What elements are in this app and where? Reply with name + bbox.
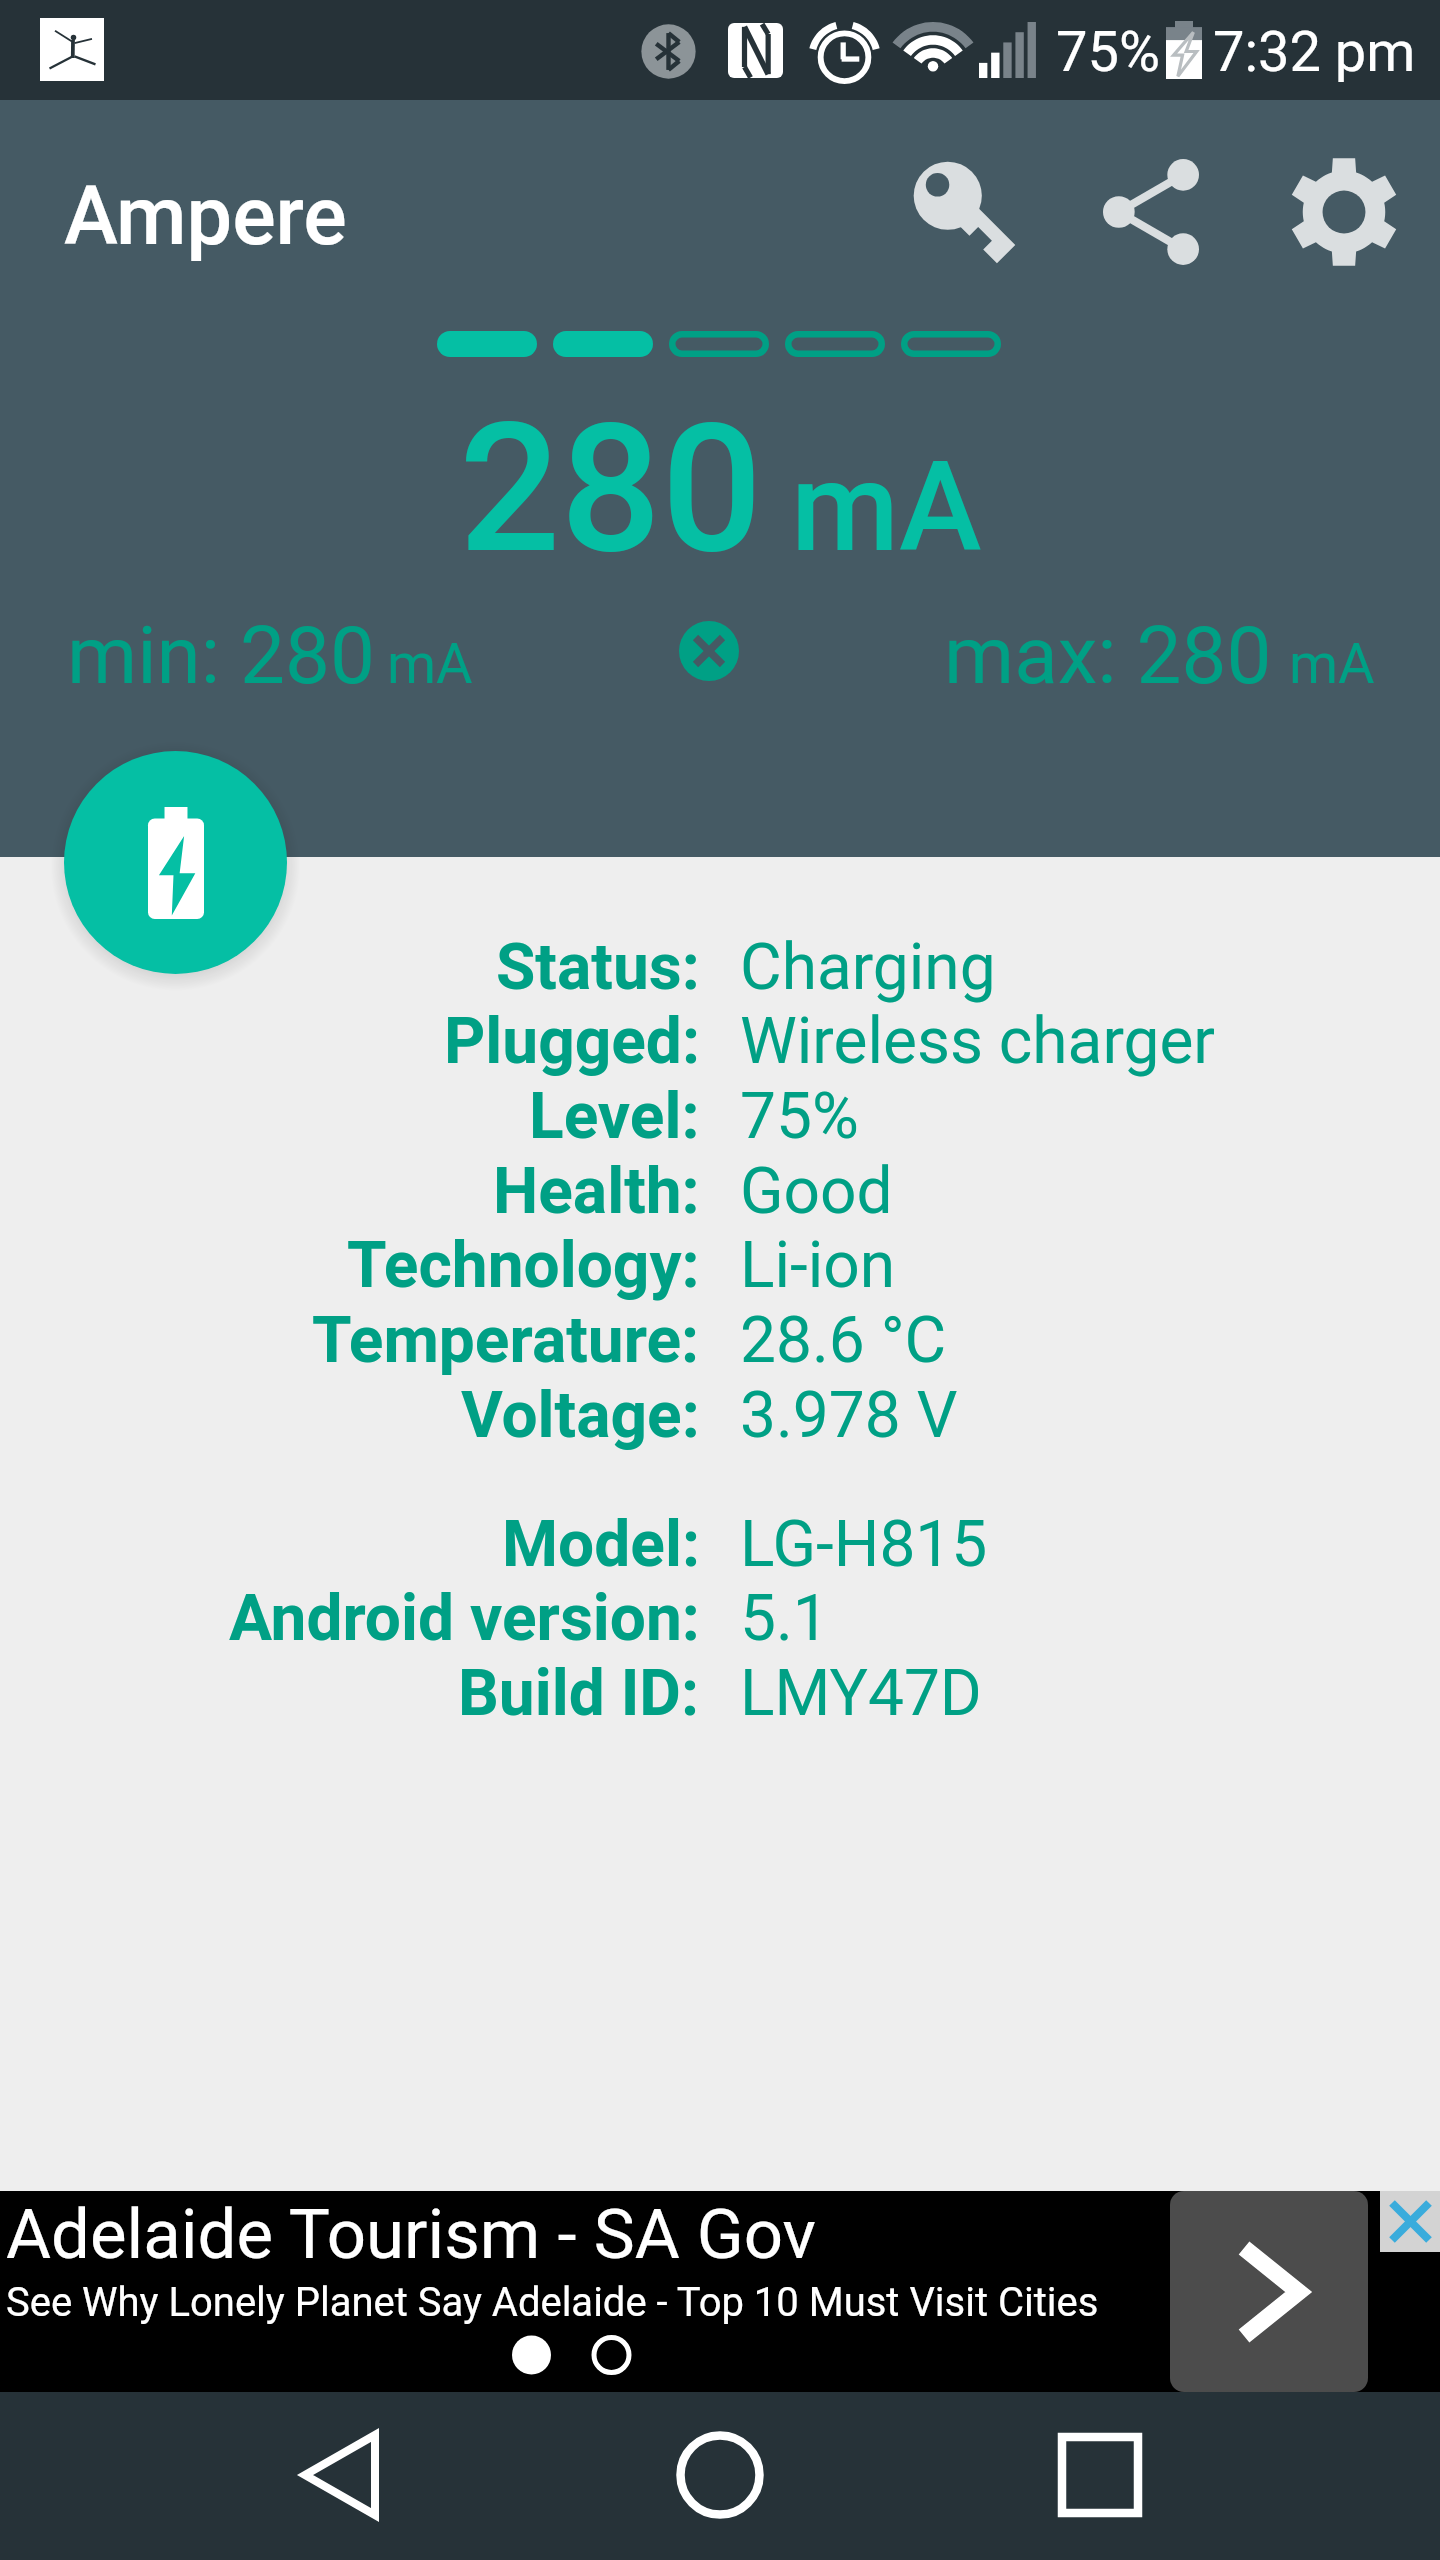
button[interactable] bbox=[0, 1380, 1440, 1454]
staticText: Model: bbox=[502, 1507, 700, 1582]
staticText: 5.1 bbox=[740, 1581, 829, 1656]
staticText: Li-ion bbox=[740, 1228, 896, 1303]
staticText: Charging bbox=[740, 930, 996, 1005]
staticText: max: 280 bbox=[944, 609, 1272, 703]
staticText: Technology: bbox=[347, 1228, 700, 1303]
staticText: 28.6 °C bbox=[740, 1303, 947, 1378]
staticText: Android version: bbox=[229, 1581, 700, 1656]
staticText: See Why Lonely Planet Say Adelaide - Top… bbox=[6, 2279, 1099, 2326]
staticText: 75% bbox=[1056, 19, 1160, 85]
staticText: Ampere bbox=[64, 169, 347, 264]
staticText: Health: bbox=[493, 1154, 700, 1229]
staticText: mA bbox=[387, 631, 473, 697]
button[interactable]: Unlock pro version bbox=[885, 134, 1037, 286]
staticText: mA bbox=[1289, 631, 1375, 697]
staticText: 280 bbox=[459, 385, 763, 594]
staticText: Build ID: bbox=[458, 1656, 700, 1731]
staticText: Status: bbox=[496, 930, 700, 1005]
button[interactable] bbox=[0, 1156, 1440, 1230]
staticText: Wireless charger bbox=[740, 1004, 1216, 1079]
staticText: LMY47D bbox=[740, 1656, 982, 1731]
button[interactable] bbox=[0, 1231, 1440, 1305]
button[interactable]: Back bbox=[260, 2395, 420, 2555]
button[interactable]: Charging status bbox=[64, 751, 287, 974]
staticText: Level: bbox=[529, 1079, 700, 1154]
staticText: mA bbox=[791, 435, 982, 580]
button[interactable]: Reset min and max bbox=[669, 611, 749, 691]
staticText: Adelaide Tourism - SA Gov bbox=[6, 2194, 817, 2275]
staticText: 75% bbox=[740, 1079, 859, 1154]
staticText: Plugged: bbox=[444, 1004, 700, 1079]
button[interactable] bbox=[0, 1584, 1440, 1658]
button[interactable]: Home bbox=[640, 2395, 800, 2555]
button[interactable] bbox=[0, 932, 1440, 1006]
staticText: 7:32 pm bbox=[1213, 19, 1416, 85]
button[interactable]: Open advertisement bbox=[1170, 2191, 1368, 2392]
button[interactable]: Recent apps bbox=[1020, 2395, 1180, 2555]
staticText: Voltage: bbox=[461, 1378, 700, 1453]
staticText: Good bbox=[740, 1154, 893, 1229]
button[interactable]: Close advertisement bbox=[1380, 2191, 1440, 2252]
button[interactable]: Share bbox=[1075, 136, 1227, 288]
button[interactable] bbox=[0, 1658, 1440, 1732]
button[interactable] bbox=[0, 1306, 1440, 1380]
staticText: Temperature: bbox=[312, 1303, 700, 1378]
button[interactable] bbox=[0, 1007, 1440, 1081]
staticText: 3.978 V bbox=[740, 1378, 958, 1453]
button[interactable] bbox=[0, 1081, 1440, 1155]
staticText: min: 280 bbox=[67, 609, 375, 703]
button[interactable]: Settings bbox=[1268, 136, 1420, 288]
button[interactable] bbox=[0, 1509, 1440, 1583]
staticText: LG-H815 bbox=[740, 1507, 988, 1582]
